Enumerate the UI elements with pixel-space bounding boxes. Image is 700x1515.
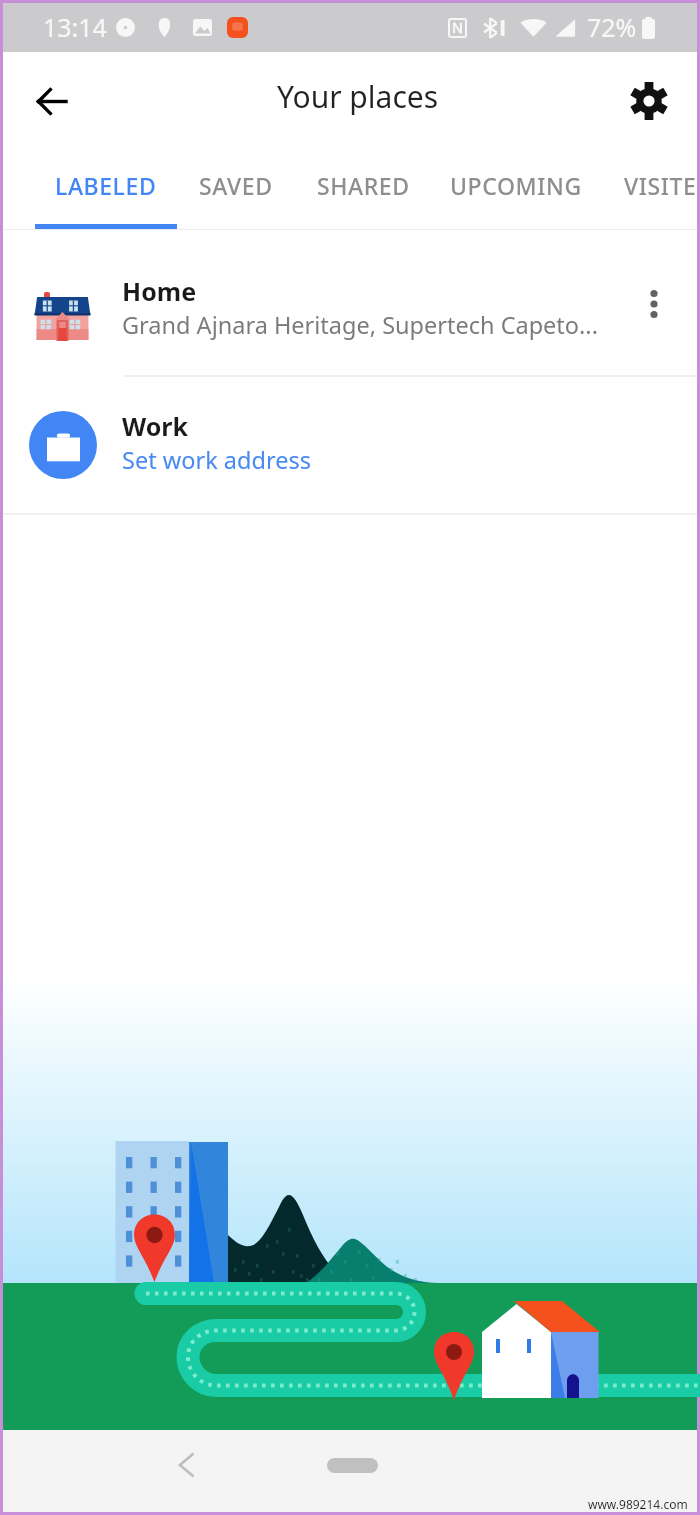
- button[interactable]: VISITED: [600, 150, 697, 229]
- staticText: Home: [122, 274, 197, 308]
- button[interactable]: Work: [3, 377, 697, 513]
- staticText: 72%: [587, 10, 637, 44]
- button[interactable]: UPCOMING: [432, 150, 600, 229]
- staticText: Grand Ajnara Heritage, Supertech Capeto.…: [122, 309, 598, 341]
- staticText: Your places: [277, 76, 439, 117]
- staticText: VISITED: [624, 170, 697, 201]
- staticText: SAVED: [199, 170, 273, 201]
- button[interactable]: More options: [610, 230, 697, 375]
- staticText: UPCOMING: [450, 170, 582, 201]
- staticText: LABELED: [55, 170, 157, 201]
- staticText: Work: [122, 409, 188, 443]
- button[interactable]: SHARED: [295, 150, 432, 229]
- button[interactable]: Home: [327, 1458, 378, 1473]
- button[interactable]: Settings: [617, 69, 681, 133]
- button[interactable]: Back: [162, 1441, 210, 1489]
- button[interactable]: SAVED: [177, 150, 295, 229]
- button[interactable]: Back: [16, 65, 88, 137]
- button[interactable]: Home: [3, 230, 697, 375]
- staticText: 13:14: [43, 10, 107, 44]
- button[interactable]: LABELED: [35, 150, 177, 229]
- staticText: www.989214.com: [588, 1496, 688, 1512]
- staticText: Set work address: [122, 444, 311, 476]
- staticText: SHARED: [317, 170, 410, 201]
